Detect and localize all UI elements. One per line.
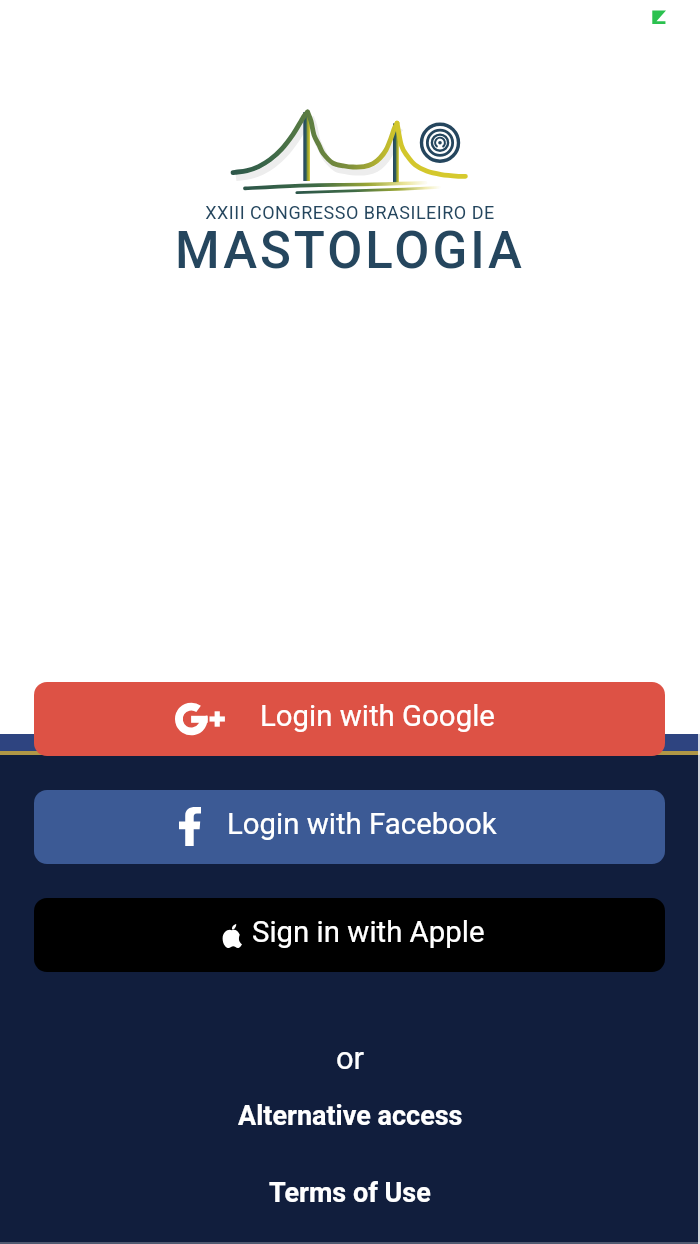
button[interactable]: [34, 790, 665, 864]
staticText: MASTOLOGIA: [0, 221, 700, 281]
button[interactable]: Terms of Use: [0, 1173, 700, 1213]
staticText: Login with Google: [260, 699, 495, 733]
staticText: Terms of Use: [269, 1177, 431, 1209]
staticText: XXIII CONGRESSO BRASILEIRO DE: [0, 202, 700, 223]
other: Network status: [652, 10, 666, 24]
button[interactable]: Alternative access: [0, 1096, 700, 1136]
staticText: Alternative access: [238, 1100, 463, 1132]
staticText: or: [0, 1040, 700, 1076]
staticText: Sign in with Apple: [252, 915, 485, 949]
button[interactable]: [34, 898, 665, 972]
staticText: Login with Facebook: [227, 807, 497, 841]
button[interactable]: [34, 682, 665, 756]
